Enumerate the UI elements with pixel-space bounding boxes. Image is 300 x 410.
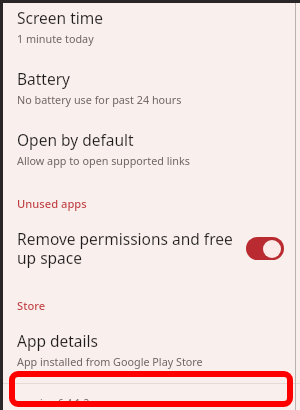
staticText: Unused apps	[17, 196, 87, 211]
staticText: version 6.4.1.2	[20, 396, 90, 410]
staticText: Battery	[17, 68, 71, 89]
button[interactable]: Remove permissions and free up space	[3, 211, 300, 269]
button[interactable]: App details	[3, 313, 300, 369]
staticText: Store	[17, 298, 46, 313]
staticText: Remove permissions and free up space	[17, 228, 243, 269]
button[interactable]: Open by default	[3, 107, 300, 168]
staticText: No battery use for past 24 hours	[17, 92, 182, 107]
staticText: 1 minute today	[17, 31, 94, 46]
staticText: Open by default	[17, 129, 134, 150]
button[interactable]: Battery	[3, 46, 300, 107]
staticText: App details	[17, 330, 98, 351]
staticText: Allow app to open supported links	[17, 153, 190, 168]
staticText: Screen time	[17, 7, 103, 28]
staticText: App installed from Google Play Store	[17, 354, 203, 369]
button[interactable]: Screen time	[3, 3, 300, 46]
button[interactable]: Remove permissions and free up space, on	[246, 237, 284, 260]
